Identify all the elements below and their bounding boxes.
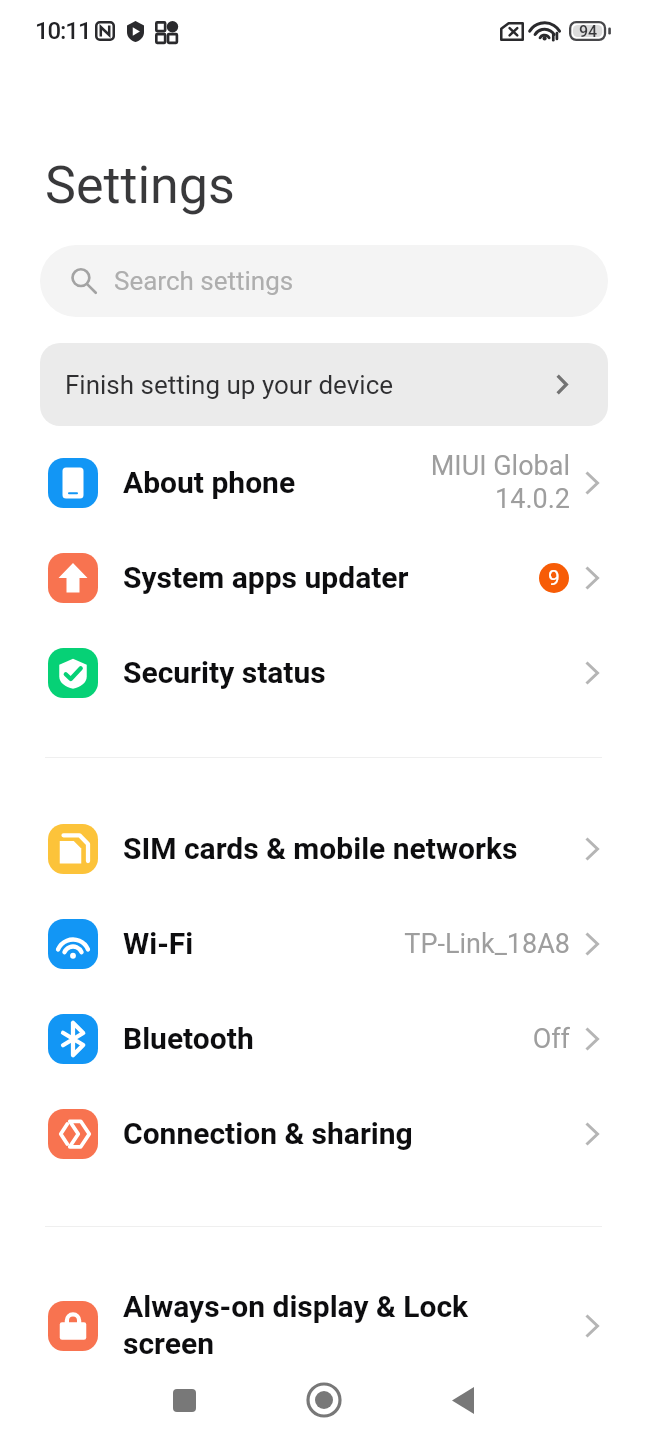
button[interactable]: Always-on display & Lock screen [0, 1278, 648, 1373]
staticText: Connection & sharing [123, 1116, 585, 1151]
staticText: TP-Link_18A8 [404, 928, 570, 960]
button[interactable]: Finish setting up your device [40, 343, 608, 426]
staticText: Search settings [114, 266, 294, 296]
staticText: SIM cards & mobile networks [123, 831, 585, 866]
staticText: System apps updater [123, 560, 539, 595]
button[interactable]: Connection & sharing [0, 1086, 648, 1181]
staticText: Wi-Fi [123, 926, 404, 961]
button[interactable]: System apps updater [0, 530, 648, 625]
staticText: 10:11 [35, 17, 91, 45]
staticText: Bluetooth [123, 1021, 532, 1056]
button[interactable]: Home [283, 1360, 365, 1440]
button[interactable]: About phone [0, 435, 648, 530]
button[interactable]: Search settings [40, 245, 608, 317]
staticText: Security status [123, 655, 585, 690]
button[interactable]: Recents [143, 1360, 225, 1440]
staticText: 94 [579, 22, 598, 41]
staticText: 9 [548, 566, 560, 591]
staticText: MIUI Global 14.0.2 [430, 450, 570, 515]
button[interactable]: Wi-Fi [0, 896, 648, 991]
button[interactable]: Bluetooth [0, 991, 648, 1086]
staticText: About phone [123, 465, 430, 500]
staticText: Finish setting up your device [65, 370, 394, 400]
button[interactable]: Security status [0, 625, 648, 720]
staticText: Settings [45, 155, 235, 216]
staticText: Always-on display & Lock screen [123, 1289, 585, 1362]
button[interactable]: Back [422, 1360, 504, 1440]
staticText: Off [532, 1023, 570, 1055]
button[interactable]: SIM cards & mobile networks [0, 801, 648, 896]
